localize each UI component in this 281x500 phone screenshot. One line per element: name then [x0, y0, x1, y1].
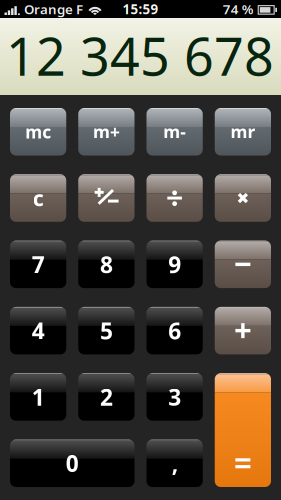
button[interactable]: mc: [10, 108, 66, 155]
button[interactable]: Equals: [215, 373, 271, 487]
button[interactable]: Plus: [215, 307, 271, 354]
staticText: 0: [66, 448, 79, 478]
staticText: 9: [168, 249, 181, 279]
staticText: 4: [32, 316, 45, 346]
staticText: 1: [32, 382, 45, 412]
staticText: m+: [93, 120, 120, 143]
staticText: 5: [100, 316, 113, 346]
button[interactable]: Minus: [215, 241, 271, 288]
button[interactable]: 4: [10, 307, 66, 354]
staticText: 6: [168, 316, 181, 346]
button[interactable]: m+: [78, 108, 134, 155]
button[interactable]: 6: [146, 307, 203, 354]
button[interactable]: ,: [146, 439, 203, 487]
button[interactable]: mr: [215, 108, 271, 155]
staticText: 12 345 678: [6, 21, 274, 90]
staticText: 15:59: [122, 0, 158, 18]
button[interactable]: 9: [146, 241, 203, 288]
button[interactable]: 1: [10, 373, 66, 421]
staticText: mc: [25, 120, 51, 143]
button[interactable]: 2: [78, 373, 134, 421]
button[interactable]: 8: [78, 241, 134, 288]
staticText: ,: [172, 448, 178, 478]
staticText: Orange F: [24, 0, 83, 18]
staticText: c: [33, 184, 44, 212]
staticText: 74 %: [223, 0, 254, 18]
button[interactable]: 3: [146, 373, 203, 421]
button[interactable]: 7: [10, 241, 66, 288]
staticText: 3: [168, 382, 181, 412]
staticText: 7: [32, 249, 45, 279]
staticText: mr: [230, 120, 255, 143]
staticText: 2: [100, 382, 113, 412]
staticText: 8: [100, 249, 113, 279]
button[interactable]: Plus or minus: [78, 174, 134, 222]
button[interactable]: 0: [10, 439, 134, 487]
button[interactable]: 5: [78, 307, 134, 354]
staticText: m-: [163, 120, 186, 143]
button[interactable]: Divide: [146, 174, 203, 222]
button[interactable]: Multiply: [215, 174, 271, 222]
button[interactable]: m-: [146, 108, 203, 155]
button[interactable]: c: [10, 174, 66, 222]
